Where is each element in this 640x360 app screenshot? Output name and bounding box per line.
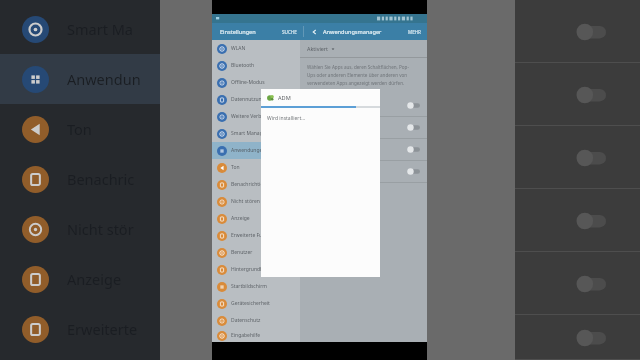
button[interactable]: Ton (212, 159, 300, 176)
staticText: Anzeige (67, 269, 122, 289)
staticText: Datennutzung (231, 96, 265, 103)
staticText: Nicht stör (67, 219, 134, 239)
button[interactable] (515, 126, 640, 189)
staticText: Smart Ma (67, 19, 133, 39)
button[interactable]: Smart Manager (212, 125, 300, 142)
staticText: Ups oder anderen Elemente über anderen v… (307, 72, 418, 78)
staticText: Anzeige (231, 215, 250, 222)
staticText: Einstellungen (220, 28, 256, 36)
staticText: Offline-Modus (231, 79, 265, 86)
staticText: Gerätesicherheit (231, 300, 270, 307)
button[interactable]: Ton (0, 104, 160, 154)
button[interactable]: Benachric (0, 154, 160, 204)
staticText: verwendeten Apps angezeigt werden dürfen… (307, 80, 405, 86)
button[interactable]: Bluetooth (212, 57, 300, 74)
button[interactable]: Anwendungen (212, 142, 300, 159)
staticText: Smart Manager (231, 130, 268, 137)
staticText: Bluetooth (231, 62, 255, 69)
staticText: Benachrichtig. (231, 181, 265, 188)
staticText: Startbildschirm (231, 283, 267, 290)
staticText: Anwendungen (231, 147, 266, 154)
button[interactable] (515, 315, 640, 360)
staticText: Weitere Verbind. (231, 113, 271, 120)
button[interactable]: Startbildschirm (212, 278, 300, 295)
button[interactable]: Messenger (300, 95, 427, 116)
staticText: SUCHE (282, 29, 297, 35)
button[interactable]: WLAN (212, 40, 300, 57)
button[interactable]: Nicht stör (0, 204, 160, 254)
button[interactable]: Datennutzung (212, 91, 300, 108)
button[interactable]: Offline-Modus (212, 74, 300, 91)
staticText: Ton (231, 164, 240, 171)
staticText: MEHR (408, 29, 421, 35)
staticText: Erweiterte (67, 319, 138, 339)
staticText: Benachric (67, 169, 135, 189)
staticText: Erweiterte Funkt. (231, 232, 272, 239)
staticText: 0,00 B (323, 107, 335, 112)
staticText: ADM (278, 94, 291, 102)
button[interactable]: Samsung Billing (300, 139, 427, 160)
staticText: Datenschutz (231, 317, 261, 324)
button[interactable]: Einstellungen (212, 23, 303, 40)
staticText: Anwendungsmanager (323, 28, 382, 36)
staticText: Wählen Sie Apps aus, deren Schaltflächen… (307, 64, 409, 70)
button[interactable]: Aktiviert (300, 40, 427, 57)
staticText: Benutzer (231, 249, 253, 256)
button[interactable]: Eingabehilfe (212, 329, 300, 342)
button[interactable]: Datenschutz (212, 312, 300, 329)
button[interactable]: Hintergrundbild (212, 261, 300, 278)
button[interactable]: Benachrichtig. (212, 176, 300, 193)
button[interactable]: Smart Ma (0, 4, 160, 54)
button[interactable]: Smart Manager (300, 161, 427, 182)
button[interactable]: Nicht stören (212, 193, 300, 210)
button[interactable]: Zurück (309, 26, 320, 37)
button[interactable]: Anwendun (0, 54, 160, 104)
staticText: WLAN (231, 45, 246, 52)
staticText: Eingabehilfe (231, 332, 261, 339)
button[interactable]: Anzeige (212, 210, 300, 227)
button[interactable]: OneDrive (300, 117, 427, 138)
button[interactable] (515, 63, 640, 126)
button[interactable]: Weitere Verbind. (212, 108, 300, 125)
staticText: Ton (67, 119, 92, 139)
staticText: Anwendun (67, 69, 141, 89)
staticText: Nicht stören (231, 198, 260, 205)
button[interactable]: Gerätesicherheit (212, 295, 300, 312)
staticText: Aktiviert (307, 45, 329, 52)
staticText: Wird installiert... (267, 115, 306, 122)
button[interactable] (515, 189, 640, 252)
button[interactable]: Anzeige (0, 254, 160, 304)
button[interactable]: Erweiterte (0, 304, 160, 354)
button[interactable]: MEHR (408, 29, 421, 35)
button[interactable]: Erweiterte Funkt. (212, 227, 300, 244)
button[interactable] (515, 252, 640, 315)
button[interactable] (515, 0, 640, 63)
button[interactable]: Benutzer (212, 244, 300, 261)
staticText: Hintergrundbild (231, 266, 269, 273)
